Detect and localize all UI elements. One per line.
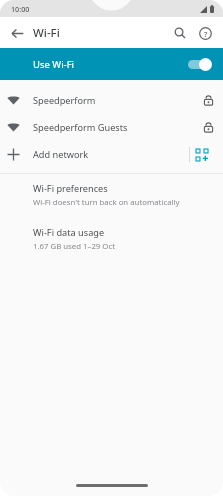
staticText: ? [204, 29, 208, 39]
button[interactable]: Help [193, 21, 217, 45]
button[interactable]: Add network [7, 141, 189, 168]
staticText: Wi-Fi data usage [33, 226, 105, 239]
staticText: Wi-Fi preferences [33, 182, 108, 195]
button[interactable]: Scan QR code to add network [190, 143, 214, 167]
staticText: Speedperform [33, 94, 96, 107]
staticText: Use Wi-Fi [33, 58, 75, 71]
button[interactable]: Back [5, 21, 29, 45]
staticText: 1.67 GB used 1–29 Oct [33, 241, 115, 252]
staticText: Wi-Fi [33, 25, 60, 41]
staticText: 10:00 [11, 4, 30, 14]
button[interactable]: Wi-Fi data usage [0, 224, 223, 254]
button[interactable]: Speedperform Guests [0, 114, 223, 141]
staticText: Speedperform Guests [33, 121, 128, 134]
staticText: Add network [33, 148, 89, 161]
button[interactable]: Search [168, 21, 192, 45]
staticText: Wi-Fi doesn't turn back on automatically [33, 197, 180, 208]
button[interactable]: Wi-Fi preferences [0, 180, 223, 210]
button[interactable]: Use Wi-Fi [0, 48, 223, 80]
button[interactable]: Speedperform [0, 87, 223, 114]
